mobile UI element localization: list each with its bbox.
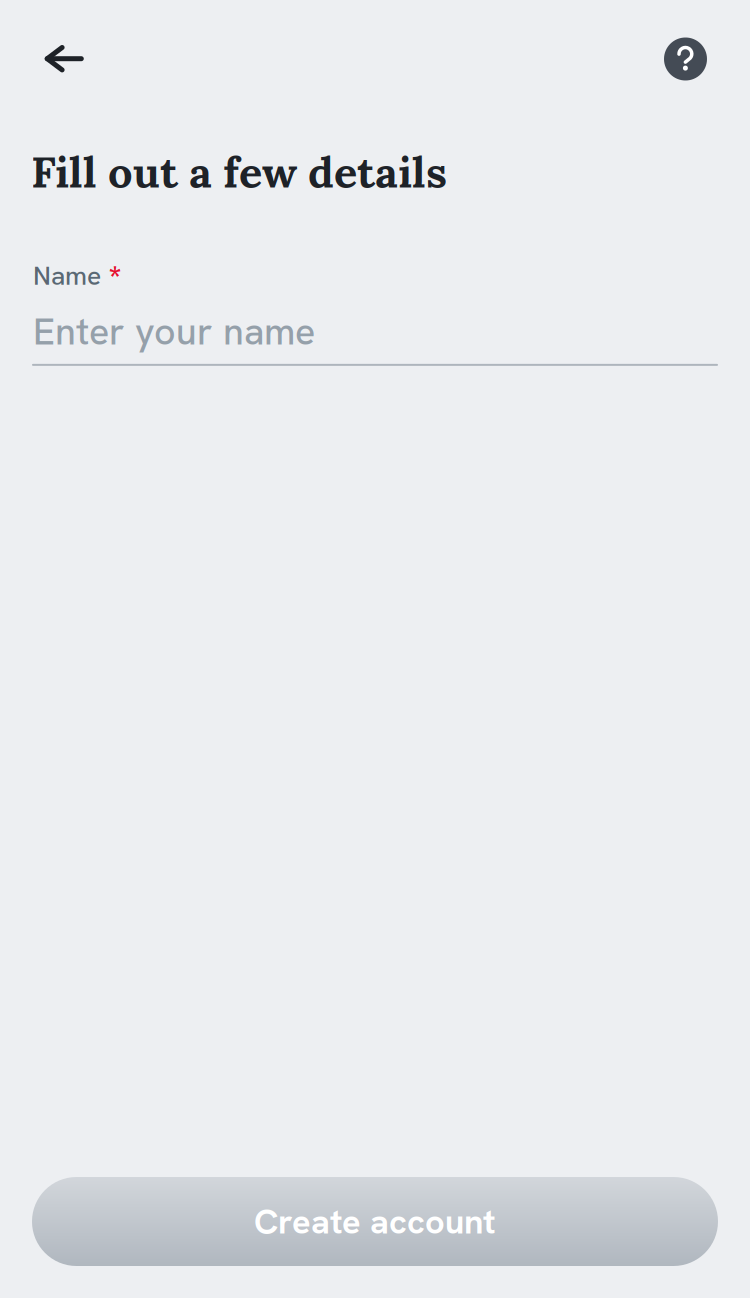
staticText: * bbox=[108, 257, 121, 300]
staticText: Name bbox=[33, 258, 101, 293]
staticText: Enter your name bbox=[33, 307, 315, 356]
button[interactable]: Create account bbox=[32, 1177, 718, 1266]
staticText: Create account bbox=[254, 1199, 496, 1244]
button[interactable]: Help bbox=[644, 21, 750, 96]
button[interactable]: Back bbox=[0, 28, 105, 89]
staticText: Fill out a few details bbox=[31, 144, 447, 199]
button[interactable]: Name, required. Enter your name bbox=[0, 199, 750, 366]
